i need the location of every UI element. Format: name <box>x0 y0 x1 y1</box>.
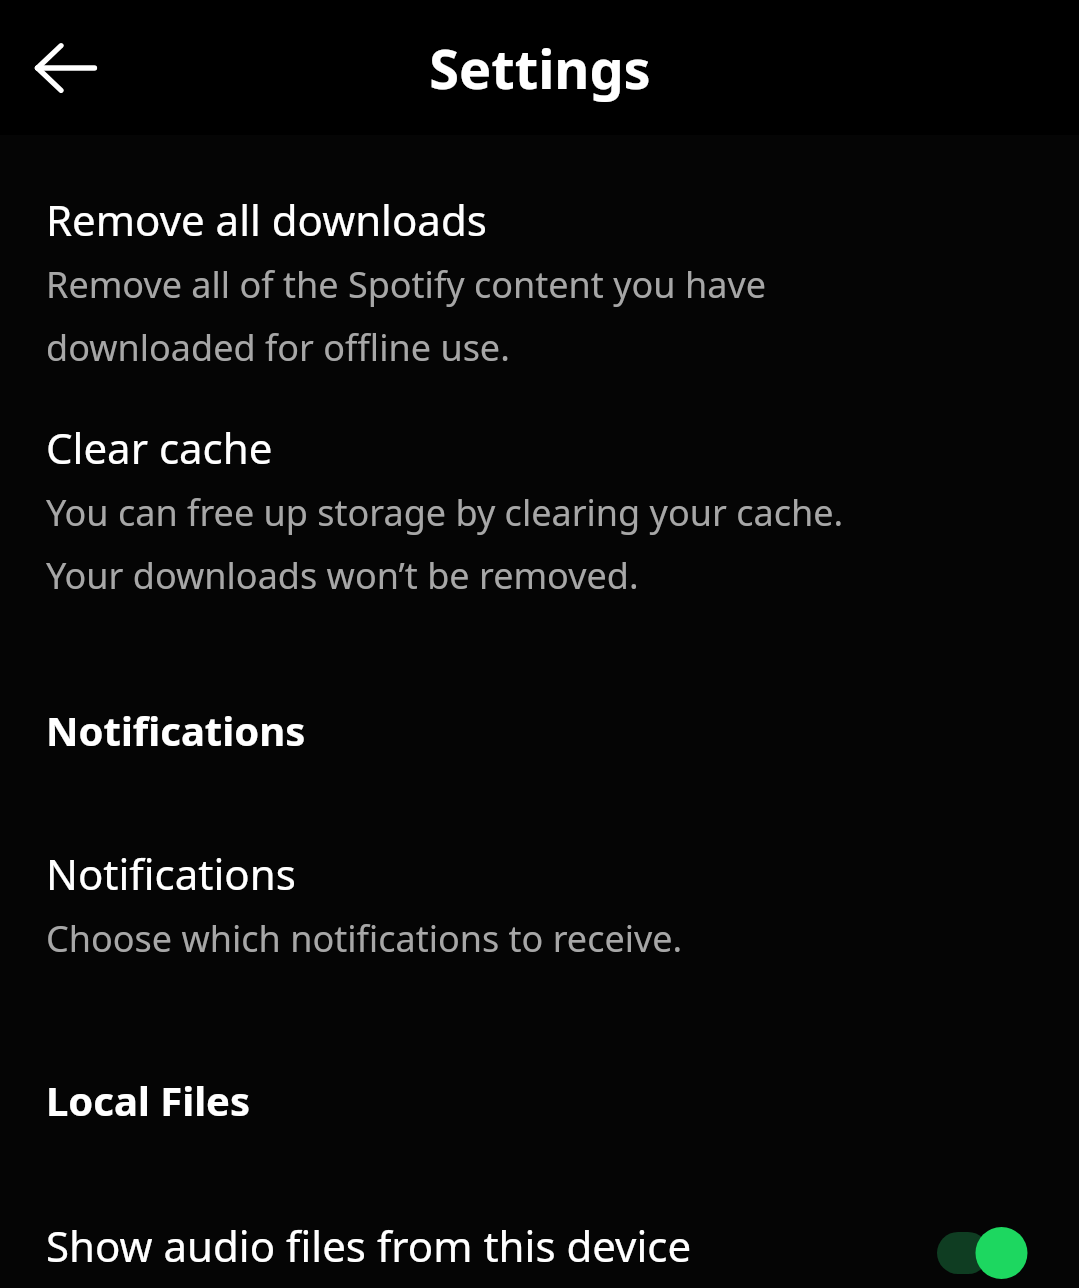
button[interactable]: Show audio files from this device <box>0 1217 1079 1288</box>
staticText: Settings <box>429 31 651 105</box>
button[interactable]: Back <box>18 20 114 116</box>
staticText: You can free up storage by clearing your… <box>46 488 913 599</box>
staticText: Notifications <box>46 845 296 902</box>
button[interactable]: Remove all downloads <box>0 191 1079 371</box>
staticText: Local Files <box>46 1073 251 1127</box>
button[interactable]: Notifications <box>0 845 1079 963</box>
staticText: Remove all downloads <box>46 191 487 248</box>
button[interactable]: Clear cache <box>0 419 1079 599</box>
staticText: Show audio files from this device <box>46 1217 692 1274</box>
staticText: Clear cache <box>46 419 273 476</box>
staticText: Notifications <box>46 703 306 757</box>
staticText: Remove all of the Spotify content you ha… <box>46 260 969 371</box>
button[interactable]: Show audio files from this device toggle <box>937 1225 1033 1281</box>
staticText: Choose which notifications to receive. <box>46 914 683 963</box>
